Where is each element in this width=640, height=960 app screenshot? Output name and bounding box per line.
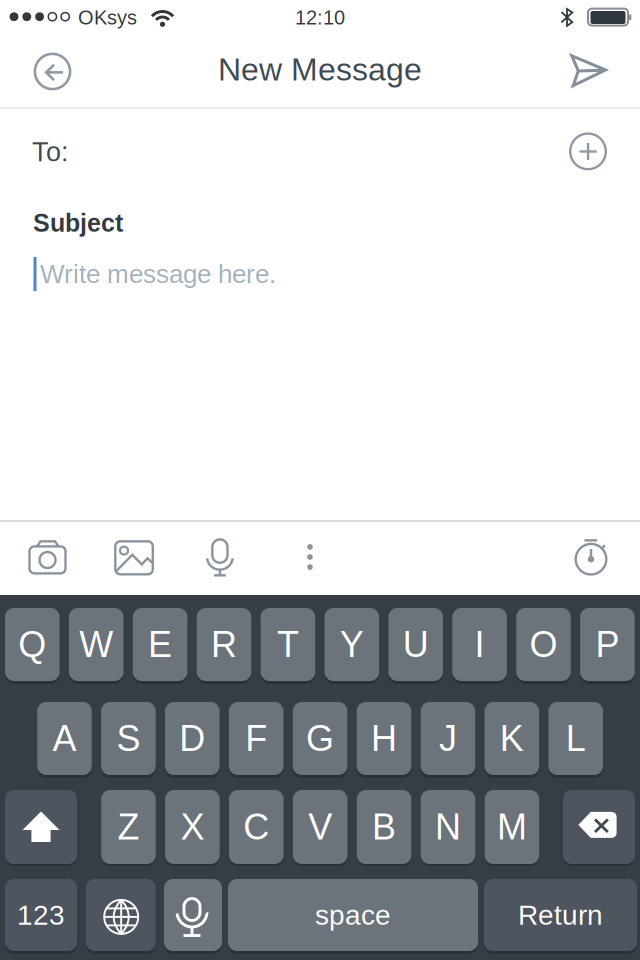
staticText: R (211, 624, 237, 665)
staticText: T (277, 624, 299, 665)
staticText: space (315, 899, 391, 931)
button[interactable]: 123 (5, 879, 77, 951)
button[interactable]: T (261, 608, 315, 681)
button[interactable]: R (197, 608, 251, 681)
button[interactable]: Q (5, 608, 60, 681)
button[interactable]: A (37, 702, 92, 775)
button[interactable]: F (229, 702, 283, 775)
button[interactable]: Delete (563, 790, 635, 864)
staticText: J (439, 718, 457, 759)
button[interactable]: E (133, 608, 187, 681)
button[interactable]: G (293, 702, 347, 775)
button[interactable]: U (388, 608, 443, 681)
button[interactable]: M (485, 790, 539, 864)
button[interactable]: Z (101, 790, 156, 864)
staticText: N (435, 807, 461, 847)
button[interactable]: J (421, 702, 475, 775)
staticText: 12:10 (295, 6, 345, 29)
button[interactable]: H (357, 702, 411, 775)
staticText: Return (518, 899, 603, 931)
staticText: C (243, 807, 269, 847)
button[interactable]: Back (27, 46, 77, 96)
button[interactable]: Y (324, 608, 379, 681)
staticText: O (529, 624, 557, 665)
button[interactable]: More (295, 535, 325, 579)
staticText: D (179, 718, 205, 759)
button[interactable]: Photos (106, 534, 162, 582)
staticText: K (500, 718, 524, 759)
button[interactable]: I (452, 608, 507, 681)
button[interactable]: Return (484, 879, 637, 951)
button[interactable]: N (421, 790, 475, 864)
staticText: OKsys (78, 6, 137, 29)
staticText: To: (32, 137, 69, 167)
staticText: S (116, 718, 140, 759)
button[interactable]: S (101, 702, 156, 775)
staticText: E (148, 624, 172, 665)
button[interactable]: Timer (567, 533, 615, 581)
button[interactable]: Camera (19, 533, 75, 581)
button[interactable]: Dictate (198, 533, 242, 581)
staticText: A (52, 718, 76, 759)
staticText: V (308, 807, 332, 847)
staticText: P (595, 624, 619, 665)
staticText: Y (340, 624, 364, 665)
staticText: I (475, 624, 485, 665)
staticText: U (403, 624, 429, 665)
staticText: F (245, 718, 267, 759)
button[interactable]: C (229, 790, 284, 864)
staticText: 123 (17, 899, 65, 931)
staticText: H (371, 718, 397, 759)
staticText: M (497, 807, 527, 847)
button[interactable]: O (516, 608, 571, 681)
staticText: New Message (218, 52, 422, 87)
staticText: L (566, 718, 586, 759)
button[interactable]: X (165, 790, 220, 864)
button[interactable]: W (69, 608, 123, 681)
button[interactable]: L (548, 702, 603, 775)
button[interactable]: V (293, 790, 347, 864)
staticText: B (372, 807, 396, 847)
button[interactable]: P (580, 608, 635, 681)
button[interactable]: space (228, 879, 478, 951)
staticText: Z (117, 807, 139, 847)
staticText: Q (18, 624, 46, 665)
button[interactable]: Next keyboard (86, 879, 156, 951)
button[interactable]: Dictate (164, 879, 222, 951)
staticText: Write message here. (40, 259, 276, 288)
staticText: X (180, 807, 204, 847)
button[interactable]: Shift (5, 790, 77, 864)
button[interactable]: B (357, 790, 411, 864)
button[interactable]: K (484, 702, 539, 775)
button[interactable]: D (165, 702, 220, 775)
staticText: Subject (33, 209, 123, 237)
staticText: G (306, 718, 334, 759)
button[interactable]: Add recipient (566, 129, 610, 173)
button[interactable]: Send (565, 51, 613, 91)
staticText: W (79, 624, 113, 665)
